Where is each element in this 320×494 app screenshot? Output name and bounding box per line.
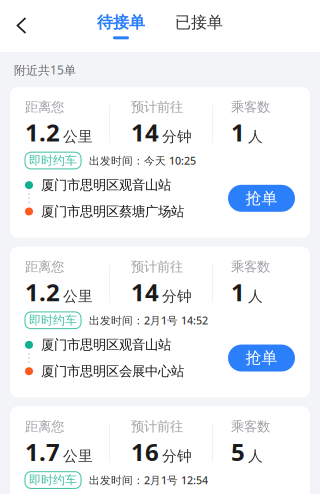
staticText: 1: [231, 116, 245, 148]
staticText: 预计前往: [131, 418, 183, 435]
staticText: 抢单: [245, 348, 277, 368]
button[interactable]: 待接单: [93, 9, 149, 43]
button[interactable]: 抢单: [228, 185, 295, 212]
staticText: 14: [131, 276, 159, 308]
staticText: 即时约车: [29, 153, 77, 168]
staticText: 乘客数: [231, 418, 270, 435]
staticText: 乘客数: [231, 259, 270, 275]
staticText: 公里: [63, 447, 93, 465]
staticText: 人: [248, 128, 263, 146]
staticText: 1.2: [25, 116, 60, 148]
staticText: 1.7: [25, 436, 60, 468]
staticText: 抢单: [245, 188, 277, 208]
staticText: 即时约车: [29, 473, 77, 487]
staticText: 即时约车: [29, 313, 77, 328]
staticText: 公里: [63, 287, 93, 305]
staticText: 预计前往: [131, 99, 183, 115]
staticText: 距离您: [25, 418, 64, 435]
staticText: 人: [248, 447, 263, 465]
staticText: 分钟: [162, 287, 192, 305]
staticText: 公里: [63, 128, 93, 146]
staticText: 16: [131, 436, 159, 468]
staticText: 5: [231, 436, 245, 468]
staticText: 厦门市思明区蔡塘广场站: [41, 203, 184, 220]
staticText: 人: [248, 287, 263, 305]
staticText: 距离您: [25, 259, 64, 275]
staticText: 分钟: [162, 128, 192, 146]
staticText: 预计前往: [131, 259, 183, 275]
staticText: 距离您: [25, 99, 64, 115]
staticText: 1: [231, 276, 245, 308]
staticText: 1.2: [25, 276, 60, 308]
staticText: 附近共15单: [14, 62, 76, 78]
button[interactable]: 已接单: [171, 9, 227, 43]
staticText: 厦门市思明区会展中心站: [41, 363, 184, 379]
button[interactable]: Back: [0, 4, 44, 48]
staticText: 出发时间：2月1号 14:52: [89, 313, 208, 327]
staticText: 14: [131, 116, 159, 148]
staticText: 已接单: [175, 13, 223, 32]
button[interactable]: 抢单: [228, 344, 295, 371]
staticText: 乘客数: [231, 99, 270, 115]
staticText: 厦门市思明区观音山站: [41, 337, 171, 353]
staticText: 出发时间：2月1号 12:54: [89, 473, 208, 487]
staticText: 分钟: [162, 447, 192, 465]
staticText: 出发时间：今天 10:25: [89, 153, 196, 168]
staticText: 厦门市思明区观音山站: [41, 177, 171, 193]
staticText: 待接单: [97, 13, 145, 32]
